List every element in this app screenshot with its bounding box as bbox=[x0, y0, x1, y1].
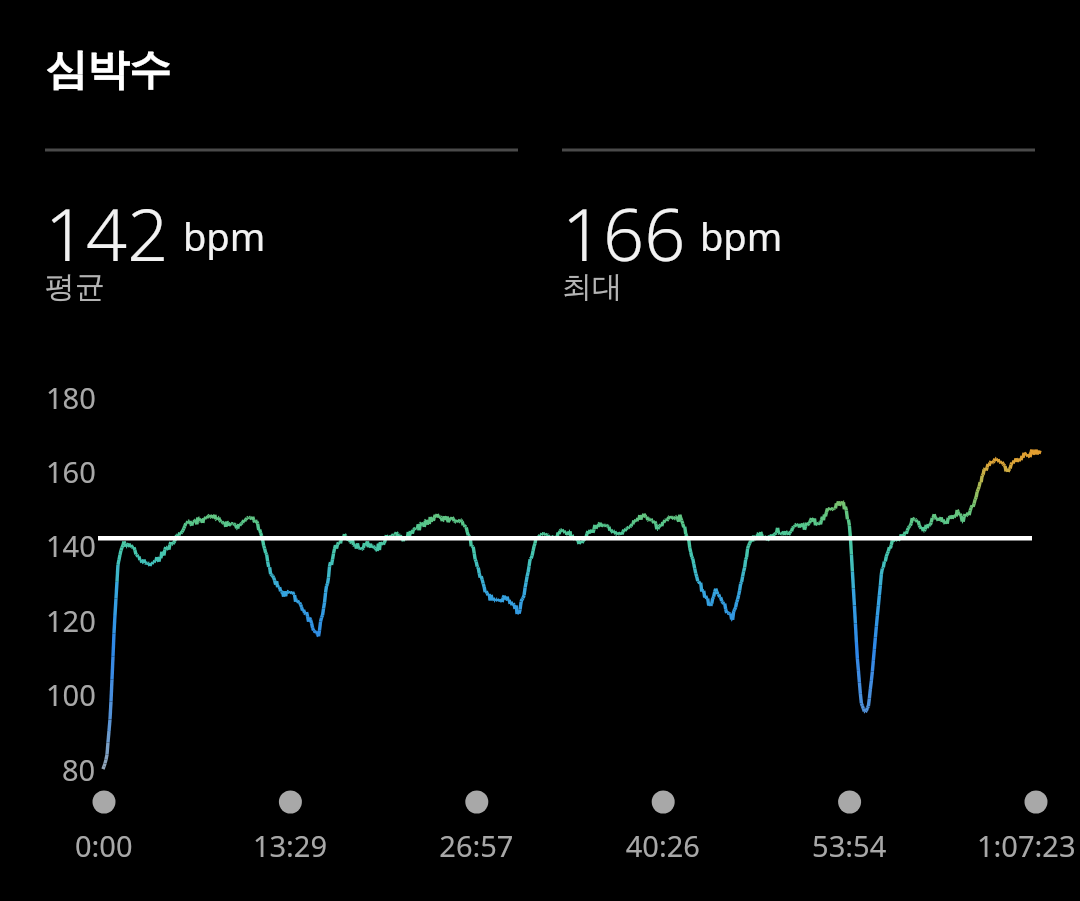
button[interactable]: Heart rate detail bbox=[0, 0, 1080, 901]
